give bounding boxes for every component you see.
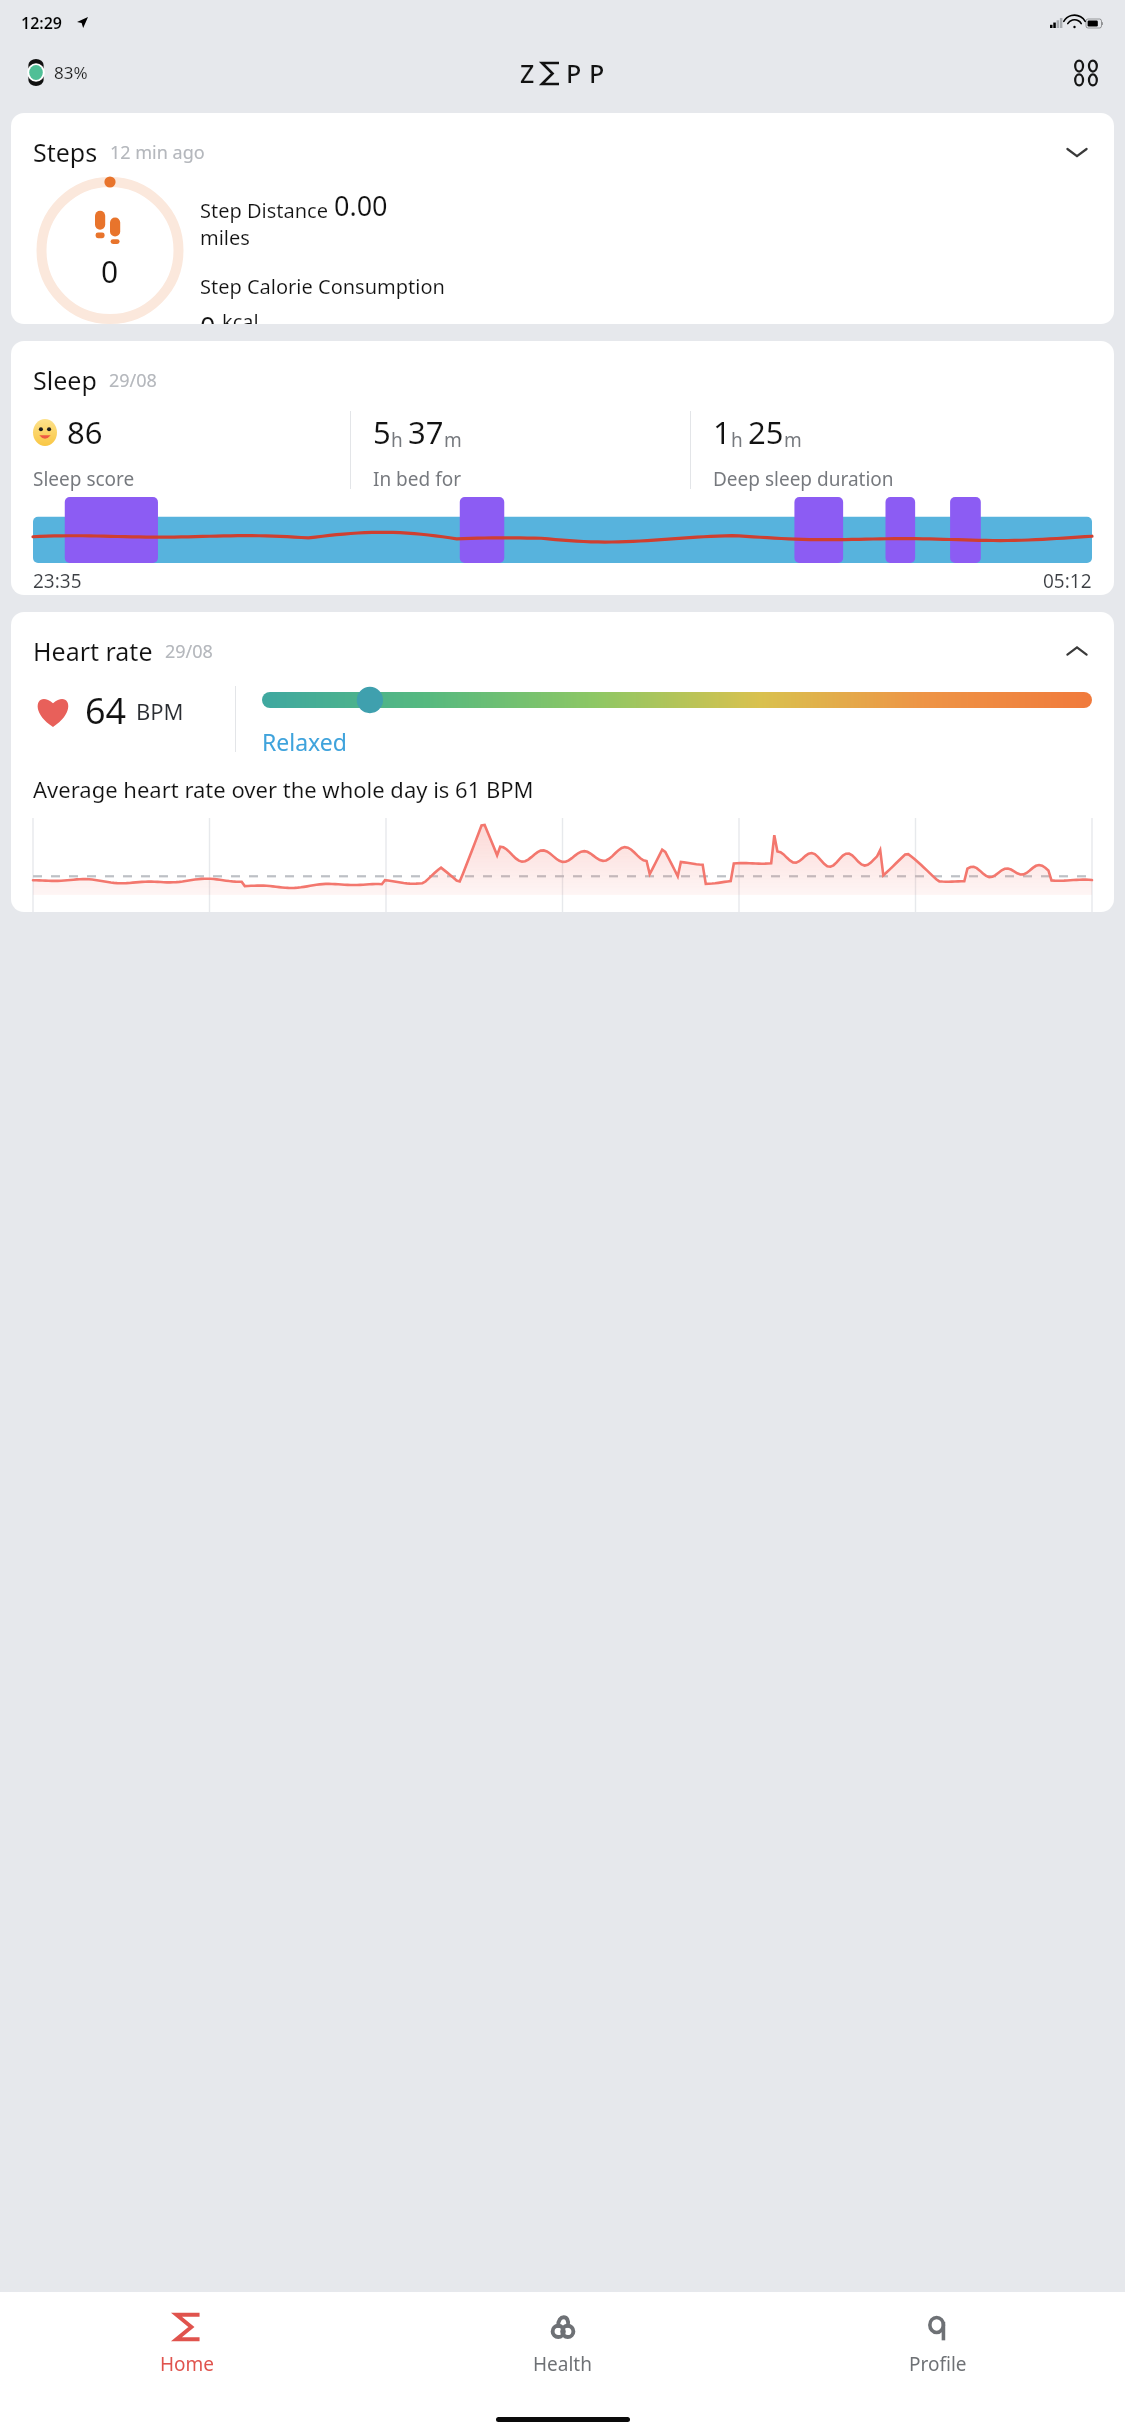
staticText: Health [533, 2351, 592, 2377]
staticText: Step Distance [200, 197, 334, 224]
staticText: kcal [222, 308, 259, 324]
staticText: BPM [136, 696, 184, 726]
staticText: 29/08 [165, 639, 213, 664]
staticText: Average heart rate over the whole day is… [33, 774, 534, 804]
staticText: Sleep score [33, 466, 135, 491]
button[interactable]: Sleep [11, 341, 1114, 595]
button[interactable]: Home [0, 2292, 375, 2402]
button[interactable]: 83% [22, 55, 92, 90]
staticText: 83% [54, 61, 88, 84]
staticText: 29/08 [109, 368, 157, 393]
staticText: m [784, 427, 802, 453]
staticText: 37 [408, 411, 444, 453]
button[interactable]: Steps [11, 113, 1114, 324]
button[interactable]: Health [375, 2292, 750, 2402]
staticText: 0 [101, 251, 119, 292]
staticText: 1 [713, 411, 731, 453]
staticText: 0.00 [334, 187, 388, 224]
staticText: miles [200, 224, 250, 251]
staticText: 64 [85, 686, 127, 735]
staticText: Profile [909, 2351, 967, 2377]
staticText: Home [160, 2351, 215, 2377]
button[interactable]: Heart rate [11, 612, 1114, 912]
staticText: Deep sleep duration [713, 466, 894, 491]
staticText: 0 [200, 308, 216, 324]
staticText: h [731, 427, 748, 453]
staticText: In bed for [373, 466, 462, 491]
button[interactable]: Expand [1062, 137, 1092, 167]
staticText: m [444, 427, 462, 453]
staticText: Step Calorie Consumption [200, 273, 445, 300]
staticText: h [391, 427, 408, 453]
staticText: 12 min ago [110, 140, 205, 165]
staticText: P [566, 56, 582, 90]
staticText: 86 [67, 411, 103, 453]
staticText: 23:35 [33, 568, 82, 590]
button[interactable]: Collapse [1062, 636, 1092, 666]
staticText: 25 [748, 411, 784, 453]
staticText: Heart rate [33, 634, 153, 668]
staticText: Z [520, 56, 535, 90]
button[interactable]: Apps [1073, 60, 1099, 86]
staticText: Sleep [33, 363, 97, 397]
staticText: 05:12 [1043, 568, 1092, 590]
staticText: 5 [373, 411, 391, 453]
staticText: 12:29 [21, 12, 63, 34]
staticText: Steps [33, 135, 98, 169]
staticText: Relaxed [262, 726, 347, 757]
button[interactable]: Profile [750, 2292, 1125, 2402]
staticText: P [589, 56, 605, 90]
